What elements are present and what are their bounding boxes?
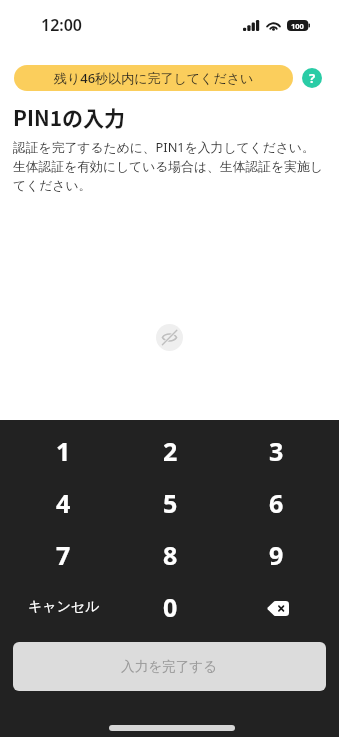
staticText: PIN1の入力: [13, 102, 126, 132]
staticText: 認証を完了するために、PIN1を入力してください。 生体認証を有効にしている場合…: [13, 138, 323, 194]
button[interactable]: 残り46秒以内に完了してください: [14, 65, 293, 91]
button[interactable]: 5: [117, 477, 223, 529]
button[interactable]: 4: [10, 477, 117, 529]
other: Backspace: [267, 601, 289, 616]
staticText: 0: [163, 590, 178, 624]
staticText: 5: [163, 486, 178, 520]
staticText: 残り46秒以内に完了してください: [54, 69, 254, 87]
button[interactable]: Show PIN: [156, 324, 183, 351]
staticText: 6: [269, 486, 284, 520]
button[interactable]: 1: [10, 425, 117, 477]
staticText: 4: [56, 486, 71, 520]
button[interactable]: 2: [117, 425, 223, 477]
staticText: 7: [56, 538, 71, 572]
button[interactable]: キャンセル: [10, 581, 117, 633]
button[interactable]: 9: [223, 529, 329, 581]
staticText: 9: [269, 538, 284, 572]
staticText: 1: [56, 434, 71, 468]
button[interactable]: 7: [10, 529, 117, 581]
staticText: キャンセル: [28, 598, 100, 616]
staticText: ?: [309, 69, 316, 87]
button[interactable]: Help: [302, 68, 322, 88]
button[interactable]: 8: [117, 529, 223, 581]
staticText: 12:00: [41, 14, 83, 36]
button[interactable]: 3: [223, 425, 329, 477]
staticText: 8: [163, 538, 178, 572]
button[interactable]: Backspace: [223, 581, 329, 633]
button[interactable]: 0: [117, 581, 223, 633]
button[interactable]: 6: [223, 477, 329, 529]
button[interactable]: 入力を完了する: [13, 642, 326, 691]
staticText: 入力を完了する: [121, 658, 218, 675]
staticText: 3: [269, 434, 284, 468]
staticText: 100: [291, 21, 304, 31]
staticText: 2: [163, 434, 178, 468]
